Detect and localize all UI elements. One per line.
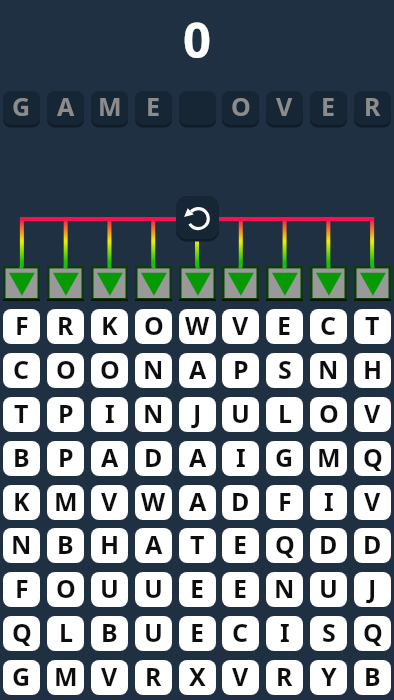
button[interactable]: A <box>47 91 84 128</box>
button[interactable]: J <box>179 397 216 432</box>
button[interactable]: E <box>135 91 172 128</box>
button[interactable]: H <box>354 353 391 388</box>
button[interactable]: E <box>222 572 259 607</box>
button[interactable]: D <box>135 441 172 476</box>
button[interactable]: C <box>222 616 259 651</box>
button[interactable]: J <box>354 572 391 607</box>
button[interactable]: Drop in column 1 <box>3 266 41 302</box>
button[interactable]: N <box>266 572 303 607</box>
button[interactable]: E <box>310 91 347 128</box>
button[interactable]: B <box>47 528 84 563</box>
button[interactable]: F <box>3 309 40 344</box>
button[interactable]: U <box>135 572 172 607</box>
button[interactable]: B <box>91 616 128 651</box>
button[interactable]: F <box>266 485 303 520</box>
button[interactable]: T <box>179 528 216 563</box>
button[interactable]: V <box>91 660 128 695</box>
button[interactable]: Drop in column 5 <box>179 266 217 302</box>
button[interactable]: V <box>266 91 303 128</box>
button[interactable]: A <box>179 485 216 520</box>
button[interactable]: Q <box>3 616 40 651</box>
button[interactable]: R <box>266 660 303 695</box>
button[interactable]: Drop in column 2 <box>47 266 85 302</box>
button[interactable]: N <box>135 353 172 388</box>
button[interactable]: A <box>179 353 216 388</box>
button[interactable]: H <box>91 528 128 563</box>
button[interactable]: U <box>91 572 128 607</box>
button[interactable]: W <box>179 309 216 344</box>
button[interactable]: E <box>266 309 303 344</box>
button[interactable]: V <box>91 485 128 520</box>
button[interactable]: Q <box>354 441 391 476</box>
button[interactable]: U <box>222 397 259 432</box>
button[interactable]: O <box>91 353 128 388</box>
button[interactable]: O <box>135 309 172 344</box>
button[interactable]: T <box>354 309 391 344</box>
button[interactable]: N <box>310 353 347 388</box>
button[interactable]: P <box>222 353 259 388</box>
button[interactable]: I <box>266 616 303 651</box>
button[interactable]: B <box>3 441 40 476</box>
button[interactable]: V <box>354 485 391 520</box>
button[interactable]: Q <box>354 616 391 651</box>
button[interactable]: Drop in column 7 <box>266 266 304 302</box>
button[interactable]: M <box>47 485 84 520</box>
button[interactable]: I <box>91 397 128 432</box>
button[interactable]: G <box>266 441 303 476</box>
button[interactable]: K <box>3 485 40 520</box>
button[interactable]: Restart game <box>176 196 219 239</box>
button[interactable]: O <box>47 572 84 607</box>
button[interactable]: I <box>222 441 259 476</box>
button[interactable]: K <box>91 309 128 344</box>
button[interactable]: Drop in column 8 <box>310 266 348 302</box>
button[interactable]: D <box>310 528 347 563</box>
button[interactable]: Y <box>310 660 347 695</box>
button[interactable]: U <box>135 616 172 651</box>
button[interactable]: L <box>266 397 303 432</box>
button[interactable]: E <box>222 528 259 563</box>
button[interactable]: X <box>179 660 216 695</box>
button[interactable]: Drop in column 3 <box>91 266 129 302</box>
button[interactable]: V <box>222 660 259 695</box>
button[interactable]: A <box>91 441 128 476</box>
button[interactable]: Drop in column 4 <box>135 266 173 302</box>
button[interactable]: Drop in column 6 <box>222 266 260 302</box>
button[interactable]: A <box>179 441 216 476</box>
button[interactable]: O <box>310 397 347 432</box>
button[interactable]: D <box>222 485 259 520</box>
button[interactable]: A <box>135 528 172 563</box>
button[interactable]: U <box>310 572 347 607</box>
button[interactable]: N <box>135 397 172 432</box>
button[interactable]: blank <box>179 91 216 128</box>
button[interactable]: N <box>3 528 40 563</box>
button[interactable]: M <box>310 441 347 476</box>
button[interactable]: W <box>135 485 172 520</box>
button[interactable]: C <box>3 353 40 388</box>
button[interactable]: E <box>179 616 216 651</box>
button[interactable]: C <box>310 309 347 344</box>
button[interactable]: R <box>135 660 172 695</box>
button[interactable]: S <box>266 353 303 388</box>
button[interactable]: I <box>310 485 347 520</box>
button[interactable]: Drop in column 9 <box>354 266 392 302</box>
button[interactable]: M <box>47 660 84 695</box>
button[interactable]: M <box>91 91 128 128</box>
button[interactable]: T <box>3 397 40 432</box>
button[interactable]: O <box>47 353 84 388</box>
button[interactable]: P <box>47 397 84 432</box>
button[interactable]: B <box>354 660 391 695</box>
button[interactable]: V <box>222 309 259 344</box>
button[interactable]: E <box>179 572 216 607</box>
button[interactable]: G <box>3 660 40 695</box>
button[interactable]: L <box>47 616 84 651</box>
button[interactable]: D <box>354 528 391 563</box>
button[interactable]: R <box>47 309 84 344</box>
button[interactable]: S <box>310 616 347 651</box>
button[interactable]: F <box>3 572 40 607</box>
button[interactable]: P <box>47 441 84 476</box>
button[interactable]: R <box>354 91 391 128</box>
button[interactable]: O <box>222 91 259 128</box>
button[interactable]: V <box>354 397 391 432</box>
button[interactable]: Q <box>266 528 303 563</box>
button[interactable]: G <box>3 91 40 128</box>
